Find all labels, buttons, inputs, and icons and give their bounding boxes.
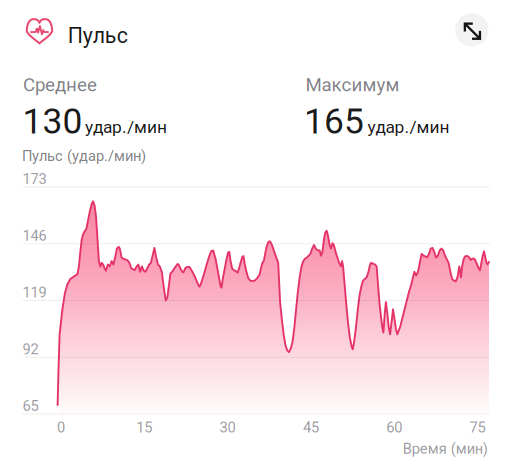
staticText: удар./мин xyxy=(367,117,449,137)
staticText: 146 xyxy=(22,227,46,244)
staticText: 65 xyxy=(22,397,38,414)
staticText: Максимум xyxy=(305,74,399,96)
staticText: 75 xyxy=(469,419,485,436)
staticText: 30 xyxy=(220,419,236,436)
staticText: удар./мин xyxy=(85,117,167,137)
staticText: 15 xyxy=(136,419,152,436)
staticText: Пульс (удар./мин) xyxy=(22,147,146,165)
staticText: 173 xyxy=(22,170,46,187)
staticText: 165 xyxy=(304,101,364,142)
staticText: 0 xyxy=(57,419,65,436)
staticText: Среднее xyxy=(23,74,97,96)
staticText: Время (мин) xyxy=(403,440,488,457)
staticText: 130 xyxy=(22,101,82,142)
staticText: 92 xyxy=(22,341,38,358)
staticText: Пульс xyxy=(68,23,128,48)
staticText: 60 xyxy=(386,419,402,436)
button[interactable]: Expand chart xyxy=(455,13,488,46)
staticText: 119 xyxy=(22,284,46,301)
staticText: 45 xyxy=(303,419,319,436)
